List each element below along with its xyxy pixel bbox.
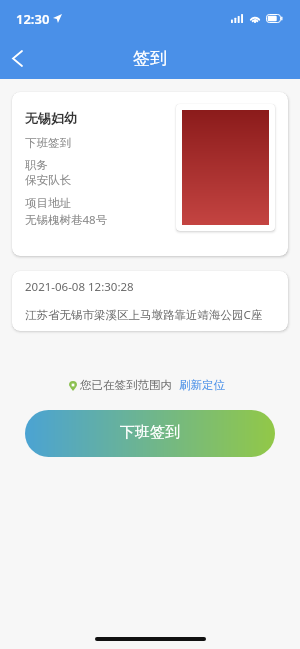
staticText: 项目地址 [25,196,71,210]
staticText: 您已在签到范围内 [80,378,172,392]
button[interactable]: 下班签到 [25,410,275,457]
staticText: 签到 [133,48,167,69]
staticText: 无锡槐树巷48号 [25,212,108,228]
staticText: 刷新定位 [179,378,225,392]
staticText: 下班签到 [25,136,71,150]
button[interactable]: 刷新定位 [179,378,225,392]
staticText: 保安队长 [25,173,71,187]
staticText: 江苏省无锡市梁溪区上马墩路靠近靖海公园C座 [25,307,263,323]
staticText: 2021-06-08 12:30:28 [25,279,134,295]
staticText: 12:30 [16,10,50,28]
staticText: 职务 [25,158,48,172]
button[interactable]: Back [0,37,35,79]
button[interactable]: 无锡妇幼 [12,92,288,256]
staticText: 无锡妇幼 [25,110,77,126]
staticText: 下班签到 [120,423,180,442]
button[interactable]: 2021-06-08 12:30:28 [12,271,288,331]
